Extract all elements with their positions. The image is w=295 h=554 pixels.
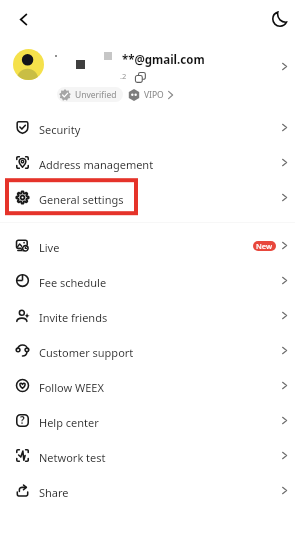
staticText: .2 (120, 71, 127, 81)
staticText: Help center (39, 415, 99, 430)
staticText: Fee schedule (39, 275, 107, 290)
button[interactable]: Customer support (0, 335, 295, 370)
button[interactable]: General settings (0, 182, 295, 217)
button[interactable]: ? (0, 405, 295, 440)
button[interactable]: Share (0, 475, 295, 510)
staticText: Security (39, 122, 81, 137)
button[interactable]: Invite friends (0, 300, 295, 335)
button[interactable]: VIPO (128, 89, 173, 101)
button[interactable]: Security (0, 112, 295, 147)
staticText: New (256, 241, 273, 251)
button[interactable]: Fee schedule (0, 265, 295, 300)
button[interactable]: **@gmail.com (0, 38, 295, 112)
staticText: Address management (39, 157, 154, 172)
staticText: Invite friends (39, 310, 108, 325)
button[interactable]: Back (11, 7, 35, 31)
staticText: Unverified (75, 89, 117, 101)
staticText: VIPO (144, 89, 164, 101)
button[interactable]: Dark mode (268, 7, 292, 31)
staticText: ? (20, 414, 25, 427)
staticText: Customer support (39, 345, 134, 360)
button[interactable]: Address management (0, 147, 295, 182)
staticText: **@gmail.com (122, 52, 205, 68)
staticText: Follow WEEX (39, 380, 104, 395)
button[interactable]: Live (0, 230, 295, 265)
staticText: Network test (39, 450, 106, 465)
staticText: Share (39, 485, 69, 500)
staticText: General settings (39, 192, 124, 207)
button[interactable]: Unverified (57, 87, 123, 102)
staticText: Live (39, 240, 60, 255)
button[interactable]: Follow WEEX (0, 370, 295, 405)
button[interactable]: Copy UID (135, 72, 146, 83)
button[interactable]: Network test (0, 440, 295, 475)
